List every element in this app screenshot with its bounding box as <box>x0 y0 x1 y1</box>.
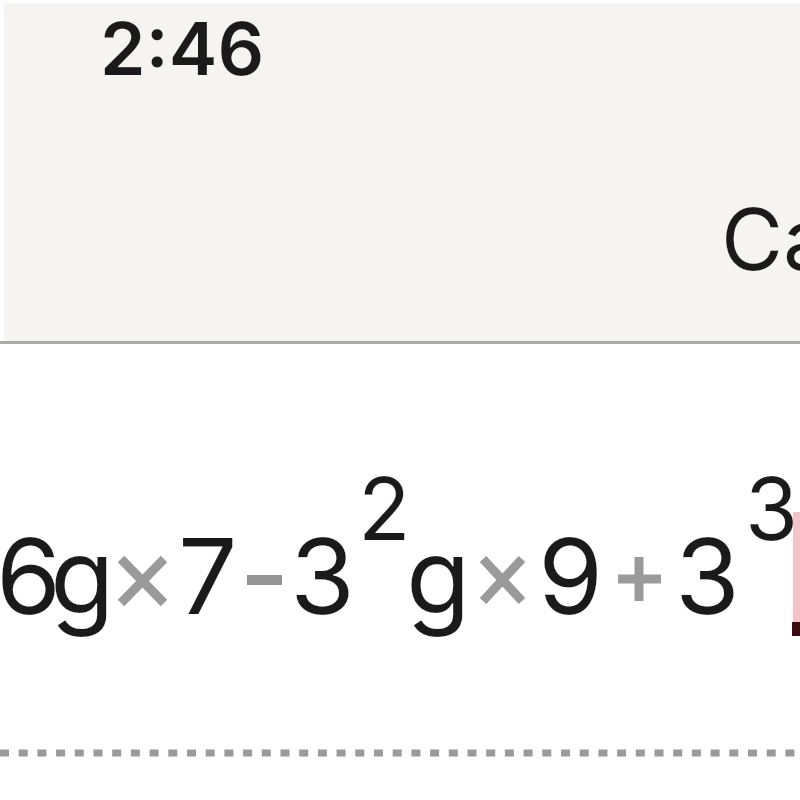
staticText: 9 <box>538 512 604 639</box>
staticText: 3 <box>290 512 355 639</box>
staticText: 2 <box>358 457 411 561</box>
staticText: 6 <box>0 512 62 639</box>
staticText: g <box>50 512 115 639</box>
staticText: 2:46 <box>100 4 265 92</box>
staticText: 3 <box>745 457 799 561</box>
button[interactable] <box>0 440 800 660</box>
staticText: 3 <box>675 512 740 639</box>
staticText: g <box>406 512 471 639</box>
button[interactable]: Cancel <box>721 188 800 291</box>
staticText: Cancel <box>721 188 800 291</box>
staticText: 7 <box>178 512 238 639</box>
